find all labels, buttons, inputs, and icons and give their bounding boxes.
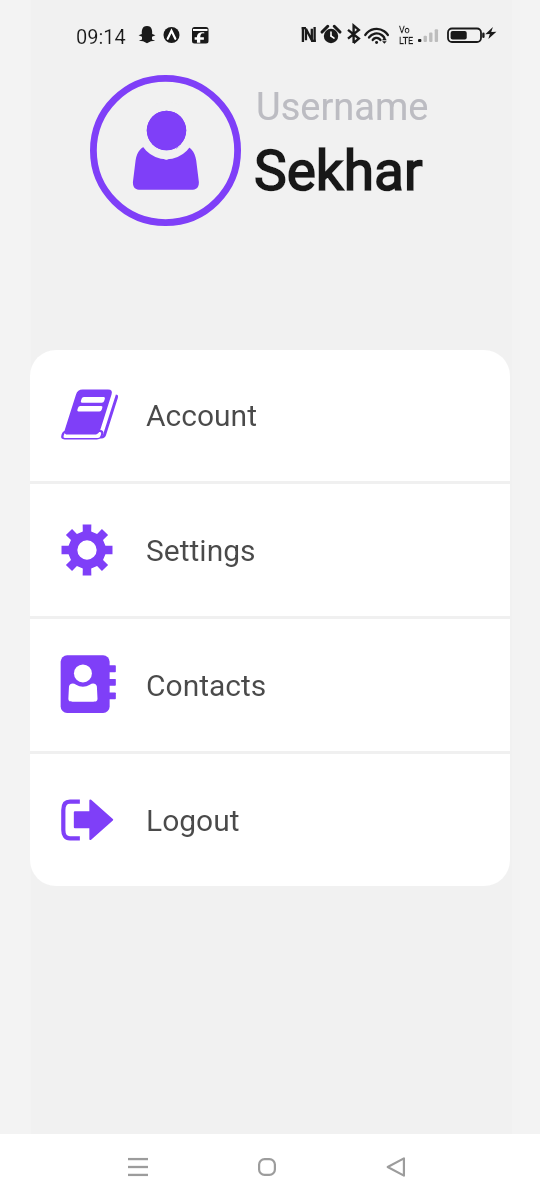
staticText: Account <box>146 398 258 433</box>
button[interactable]: Contacts <box>30 619 510 751</box>
button[interactable]: Recent apps <box>107 1134 168 1200</box>
staticText: Username <box>256 85 429 130</box>
staticText: Settings <box>146 533 256 568</box>
staticText: Vo <box>399 25 410 36</box>
button[interactable]: Settings <box>30 484 510 616</box>
staticText: 09:14 <box>76 25 126 48</box>
staticText: Logout <box>146 803 240 838</box>
staticText: Contacts <box>146 668 267 703</box>
staticText: LTE <box>399 36 414 47</box>
button[interactable]: Logout <box>30 754 510 886</box>
button[interactable]: Back <box>365 1134 426 1200</box>
button[interactable]: Account <box>30 350 510 481</box>
staticText: Sekhar <box>254 139 423 203</box>
button[interactable]: Home <box>236 1134 297 1200</box>
